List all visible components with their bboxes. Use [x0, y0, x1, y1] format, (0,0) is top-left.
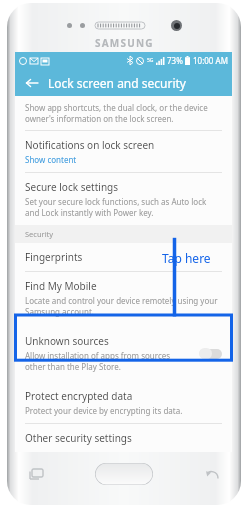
staticText: Set your secure lock functions, such as …: [25, 196, 207, 218]
button[interactable]: Unknown sources: [25, 334, 222, 372]
staticText: Lock screen and security: [48, 75, 186, 91]
staticText: Find My Mobile: [25, 279, 97, 293]
staticText: Secure lock settings: [25, 180, 118, 194]
staticText: 10:00 AM: [193, 55, 228, 66]
staticText: Protect encrypted data: [25, 389, 133, 403]
staticText: Security: [25, 229, 54, 239]
staticText: Show content: [25, 154, 77, 165]
staticText: Other security settings: [25, 431, 132, 445]
button[interactable]: Recents: [24, 462, 48, 486]
staticText: Fingerprints: [25, 250, 83, 264]
staticText: Protect your device by encrypting its da…: [25, 405, 183, 416]
staticText: Show app shortcuts, the dual clock, or t…: [25, 102, 208, 124]
button[interactable]: Fingerprints: [25, 243, 222, 271]
button[interactable]: Notifications on lock screen: [25, 131, 222, 172]
staticText: Unknown sources: [25, 334, 109, 348]
button[interactable]: Find My Mobile: [25, 272, 222, 324]
staticText: Tap here: [162, 250, 211, 266]
button[interactable]: Back: [22, 73, 42, 93]
staticText: SAMSUNG: [95, 36, 154, 50]
staticText: 5G: [147, 57, 154, 64]
button[interactable]: Other security settings: [25, 424, 222, 452]
staticText: 73%: [167, 55, 183, 66]
staticText: Locate and control your device remotely …: [25, 295, 218, 317]
staticText: Notifications on lock screen: [25, 138, 155, 152]
staticText: Allow installation of apps from sources …: [25, 350, 171, 372]
button[interactable]: Secure lock settings: [25, 173, 222, 225]
button[interactable]: Protect encrypted data: [25, 382, 222, 423]
button[interactable]: Back: [200, 462, 224, 486]
button[interactable]: Home: [95, 463, 153, 485]
